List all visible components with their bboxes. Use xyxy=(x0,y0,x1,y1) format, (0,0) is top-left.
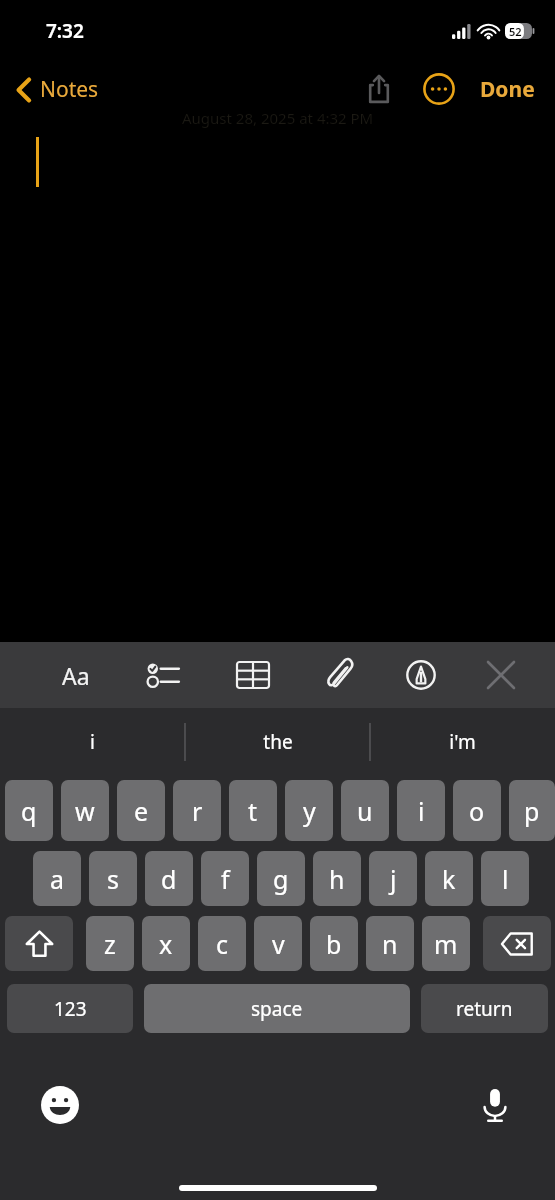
staticText: g xyxy=(273,862,289,896)
button[interactable]: Dictation xyxy=(469,1079,521,1131)
button[interactable]: j xyxy=(369,851,417,906)
staticText: m xyxy=(434,927,458,961)
staticText: August 28, 2025 at 4:32 PM xyxy=(182,108,374,128)
staticText: z xyxy=(104,927,116,961)
staticText: l xyxy=(502,862,509,896)
staticText: r xyxy=(192,794,203,828)
staticText: Notes xyxy=(40,75,99,104)
button[interactable]: e xyxy=(117,780,165,841)
button[interactable]: b xyxy=(310,916,358,971)
staticText: w xyxy=(75,794,95,828)
button[interactable]: More options xyxy=(416,66,462,112)
staticText: return xyxy=(456,996,513,1022)
button[interactable]: r xyxy=(173,780,221,841)
button[interactable]: m xyxy=(422,916,470,971)
staticText: i xyxy=(90,729,95,755)
staticText: f xyxy=(221,862,230,896)
button[interactable]: Done xyxy=(472,67,543,112)
button[interactable]: Backspace xyxy=(483,916,551,971)
button[interactable]: i'm xyxy=(370,708,555,776)
button[interactable]: c xyxy=(198,916,246,971)
staticText: 7:32 xyxy=(46,18,84,44)
button[interactable]: space xyxy=(144,984,410,1033)
staticText: v xyxy=(272,927,285,961)
button[interactable]: g xyxy=(257,851,305,906)
button[interactable]: i xyxy=(0,708,185,776)
staticText: a xyxy=(50,862,65,896)
button[interactable]: i xyxy=(397,780,445,841)
button[interactable]: t xyxy=(229,780,277,841)
button[interactable]: k xyxy=(425,851,473,906)
button[interactable]: u xyxy=(341,780,389,841)
button[interactable]: v xyxy=(254,916,302,971)
staticText: h xyxy=(329,862,345,896)
staticText: 123 xyxy=(54,996,87,1022)
staticText: n xyxy=(382,927,398,961)
button[interactable]: d xyxy=(145,851,193,906)
button[interactable]: f xyxy=(201,851,249,906)
button[interactable]: l xyxy=(481,851,529,906)
button[interactable]: Attach xyxy=(312,642,368,708)
button[interactable]: w xyxy=(61,780,109,841)
staticText: k xyxy=(442,862,456,896)
staticText: 52 xyxy=(509,24,522,39)
button[interactable]: Shift xyxy=(5,916,73,971)
staticText: y xyxy=(303,794,316,828)
staticText: d xyxy=(161,862,177,896)
staticText: u xyxy=(357,794,373,828)
staticText: t xyxy=(248,794,258,828)
button[interactable]: h xyxy=(313,851,361,906)
button[interactable]: Markup xyxy=(393,642,449,708)
button[interactable]: o xyxy=(453,780,501,841)
staticText: space xyxy=(251,996,303,1022)
button[interactable]: x xyxy=(142,916,190,971)
button[interactable]: p xyxy=(509,780,555,841)
button[interactable]: a xyxy=(33,851,81,906)
button[interactable]: Emoji xyxy=(34,1079,86,1131)
button[interactable]: Notes xyxy=(10,69,105,110)
button[interactable]: Checklist xyxy=(136,642,192,708)
button[interactable]: the xyxy=(185,708,370,776)
button[interactable]: Close keyboard xyxy=(473,642,529,708)
button[interactable]: Text format xyxy=(48,642,104,708)
button[interactable]: s xyxy=(89,851,137,906)
staticText: p xyxy=(524,794,540,828)
staticText: Aa xyxy=(62,660,90,691)
button[interactable]: z xyxy=(86,916,134,971)
staticText: c xyxy=(216,927,229,961)
staticText: the xyxy=(263,729,293,755)
staticText: j xyxy=(390,862,397,896)
staticText: i xyxy=(418,794,425,828)
button[interactable]: Table xyxy=(225,642,281,708)
button[interactable]: Share xyxy=(356,66,402,112)
staticText: o xyxy=(469,794,485,828)
staticText: b xyxy=(326,927,342,961)
staticText: s xyxy=(107,862,119,896)
button[interactable]: n xyxy=(366,916,414,971)
button[interactable]: q xyxy=(5,780,53,841)
button[interactable]: return xyxy=(421,984,548,1033)
staticText: q xyxy=(21,794,37,828)
button[interactable]: y xyxy=(285,780,333,841)
staticText: x xyxy=(159,927,173,961)
staticText: e xyxy=(134,794,149,828)
staticText: i'm xyxy=(449,729,476,755)
staticText: Done xyxy=(480,75,535,104)
button[interactable]: 123 xyxy=(7,984,133,1033)
